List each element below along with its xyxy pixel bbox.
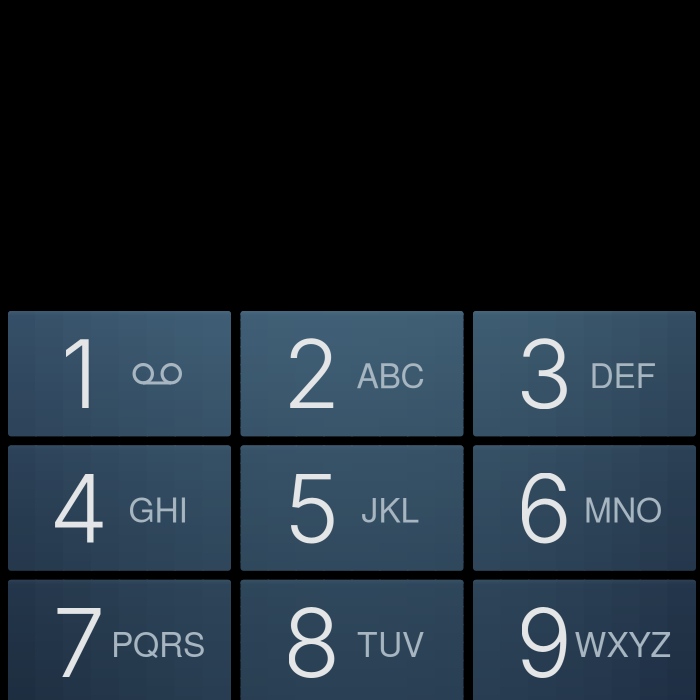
staticText: 3 (515, 316, 572, 431)
staticText: DEF (589, 350, 656, 398)
button[interactable]: 2 (240, 311, 463, 436)
staticText: MNO (584, 484, 662, 532)
button[interactable]: 7 (8, 580, 231, 700)
button[interactable]: 5 (240, 445, 463, 571)
button[interactable]: 6 (473, 445, 696, 571)
staticText: PQRS (111, 618, 205, 666)
button[interactable]: 8 (240, 580, 463, 700)
staticText: 1 (60, 316, 97, 431)
staticText: WXYZ (574, 618, 671, 666)
staticText: 5 (283, 451, 339, 565)
staticText: 7 (52, 585, 105, 700)
button[interactable]: 1 (8, 311, 231, 436)
button[interactable]: 3 (473, 311, 696, 436)
staticText: ABC (356, 350, 424, 398)
staticText: 8 (282, 585, 340, 700)
button[interactable]: 9 (473, 580, 696, 700)
staticText: 6 (515, 451, 572, 565)
staticText: JKL (361, 484, 419, 532)
staticText: 9 (515, 585, 572, 700)
staticText: 2 (282, 316, 340, 431)
staticText: GHI (128, 484, 187, 532)
staticText: 4 (49, 451, 109, 565)
button[interactable]: 4 (8, 445, 231, 571)
staticText: TUV (357, 618, 424, 666)
